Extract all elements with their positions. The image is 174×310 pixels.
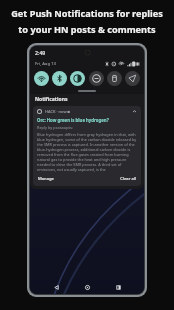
button[interactable]: Clear all — [119, 175, 137, 183]
button[interactable]: Manage — [37, 175, 55, 183]
staticText: Fri, Aug 13 — [35, 61, 56, 67]
staticText: Orc: How green is blue hydrogen? — [37, 117, 109, 123]
button[interactable]: Bluetooth — [52, 71, 67, 86]
staticText: Manage — [38, 176, 54, 182]
button[interactable]: Location — [125, 71, 140, 86]
button[interactable]: Home — [82, 282, 92, 292]
button[interactable]: Back — [51, 282, 61, 292]
button[interactable]: Recents — [113, 282, 123, 292]
staticText: Clear all — [120, 176, 136, 182]
button[interactable]: Wi-Fi — [34, 71, 49, 86]
staticText: Reply by pcasaupts: — [37, 125, 73, 130]
staticText: HACK · now ▪ — [45, 109, 71, 114]
staticText: to your HN posts & comments — [18, 23, 156, 36]
button[interactable]: Flashlight — [107, 71, 122, 86]
button[interactable]: HACK · now ▪ — [33, 106, 141, 186]
button[interactable]: Dark theme — [70, 71, 85, 86]
button[interactable]: Do not disturb — [89, 71, 104, 86]
staticText: Blue hydrogen differs from gray hydrogen… — [37, 132, 137, 172]
staticText: Notifications — [35, 96, 68, 103]
staticText: Get Push Notifications for replies — [11, 7, 163, 20]
staticText: 2:49 — [35, 49, 46, 56]
other: Collapse — [132, 109, 137, 114]
